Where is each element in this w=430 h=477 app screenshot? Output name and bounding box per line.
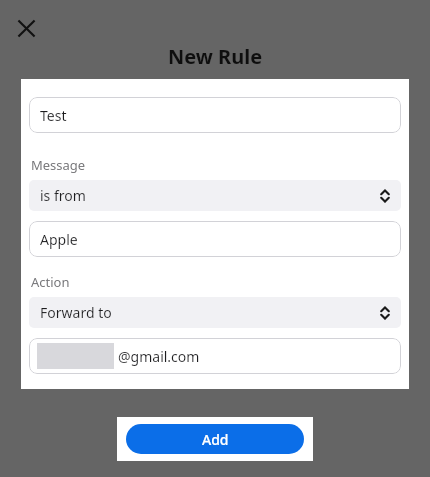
button[interactable]: @gmail.com: [29, 338, 401, 374]
button[interactable]: Forward to: [29, 297, 401, 328]
staticText: New Rule: [168, 43, 263, 70]
other: Select option: [378, 189, 392, 203]
button[interactable]: Add: [126, 424, 304, 454]
staticText: Apple: [40, 230, 78, 249]
button[interactable]: Close: [10, 12, 42, 44]
staticText: is from: [40, 186, 86, 205]
button[interactable]: Apple: [29, 221, 401, 257]
staticText: Add: [202, 430, 229, 449]
staticText: Action: [31, 273, 70, 291]
button[interactable]: is from: [29, 180, 401, 211]
other: Select option: [378, 306, 392, 320]
staticText: Test: [40, 106, 67, 125]
staticText: Forward to: [40, 303, 112, 322]
button[interactable]: Test: [29, 97, 401, 133]
staticText: Message: [31, 156, 86, 174]
staticText: @gmail.com: [118, 347, 200, 366]
